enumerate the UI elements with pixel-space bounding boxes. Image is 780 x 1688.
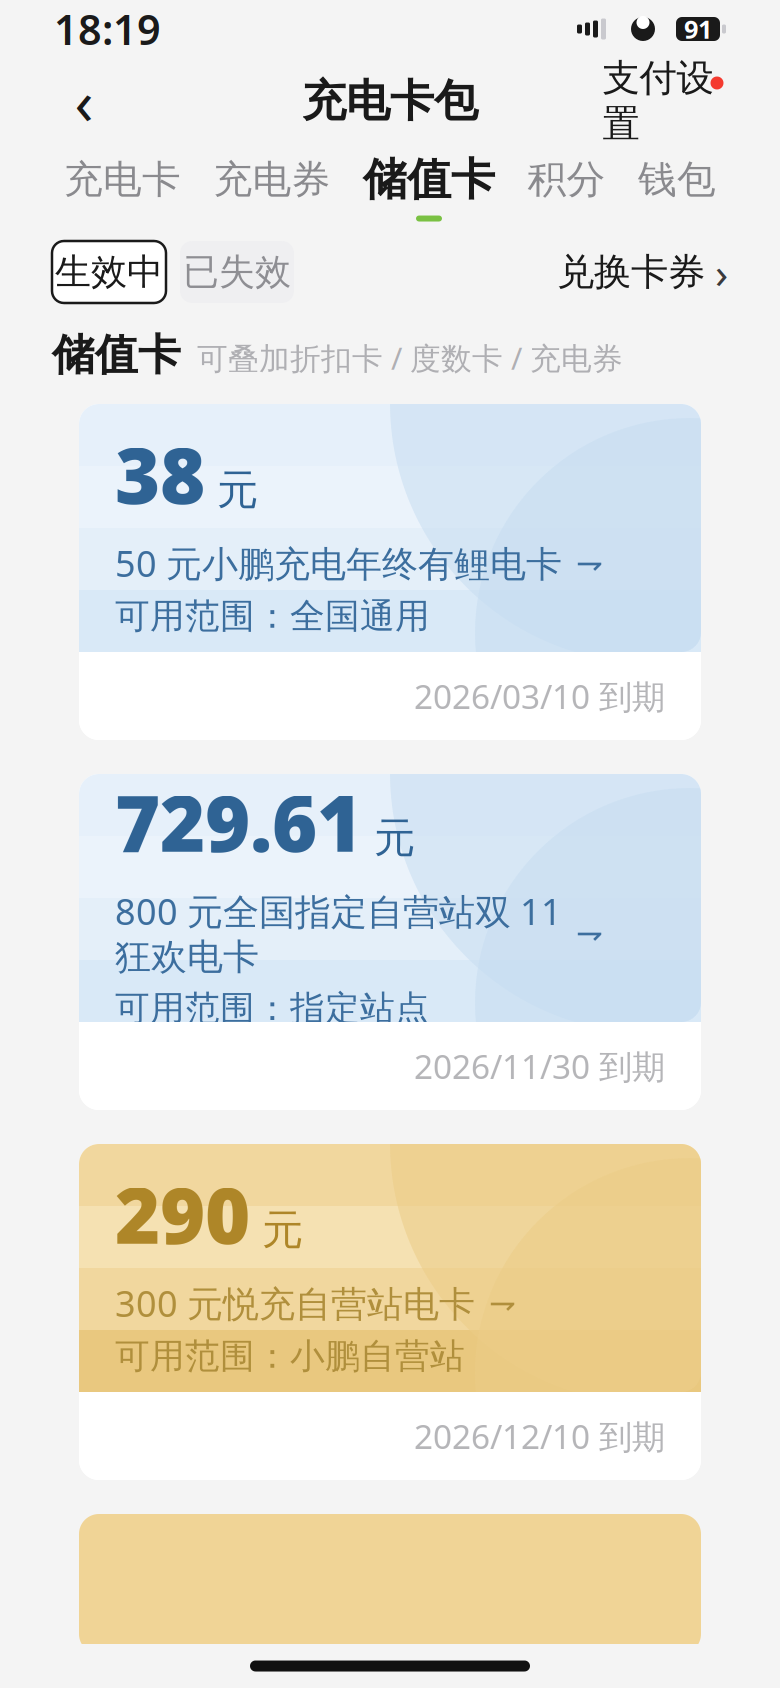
staticText: 充电卡 <box>64 156 181 203</box>
staticText: 可用范围：全国通用 <box>115 595 430 638</box>
button[interactable]: 290 <box>79 1144 701 1480</box>
button[interactable]: 38 <box>79 404 701 740</box>
staticText: 可用范围：小鹏自营站 <box>115 1335 465 1378</box>
staticText: 2026/03/10 到期 <box>414 674 665 718</box>
staticText: 729.61 <box>115 770 362 873</box>
staticText: ⇁ <box>489 1285 516 1321</box>
staticText: 已失效 <box>183 250 291 294</box>
staticText: 积分 <box>527 156 605 203</box>
staticText: ⇁ <box>576 915 603 951</box>
staticText: 钱包 <box>638 156 716 203</box>
staticText: 可叠加折扣卡 / 度数卡 / 充电券 <box>197 337 623 378</box>
button[interactable]: 生效中 <box>52 241 166 303</box>
button[interactable]: 钱包 <box>630 156 724 218</box>
staticText: 元 <box>217 465 258 515</box>
button[interactable]: 充电卡 <box>56 156 189 218</box>
staticText: 生效中 <box>55 250 163 294</box>
staticText: › <box>715 244 728 300</box>
staticText: 可用范围：指定站点 <box>115 987 430 1030</box>
staticText: ‹ <box>74 60 93 142</box>
staticText: 储值卡 <box>52 329 181 381</box>
button[interactable]: 支付设置 <box>588 69 728 133</box>
button[interactable]: 已失效 <box>180 241 294 303</box>
button[interactable]: 729.61 <box>79 774 701 1110</box>
button[interactable]: Back <box>52 69 116 133</box>
button[interactable]: 储值卡 <box>355 152 503 221</box>
staticText: 兑换卡券 <box>557 249 705 295</box>
staticText: ⇁ <box>576 545 603 581</box>
staticText: 储值卡 <box>363 152 495 206</box>
button[interactable]: 充电券 <box>205 156 338 218</box>
staticText: 38 <box>115 422 205 525</box>
staticText: 充电卡包 <box>302 74 478 128</box>
staticText: 2026/12/10 到期 <box>414 1414 665 1458</box>
staticText: 18:19 <box>54 2 161 56</box>
staticText: 元 <box>374 813 415 863</box>
staticText: 300 元悦充自营站电卡 <box>115 1279 475 1327</box>
staticText: 2026/11/30 到期 <box>414 1044 665 1088</box>
staticText: 91 <box>684 12 712 46</box>
staticText: 充电券 <box>213 156 330 203</box>
staticText: 元 <box>262 1205 303 1255</box>
button[interactable]: 积分 <box>519 156 613 218</box>
button[interactable]: 兑换卡券 <box>557 241 728 303</box>
staticText: 290 <box>115 1162 250 1265</box>
staticText: 50 元小鹏充电年终有鲤电卡 <box>115 539 562 587</box>
staticText: 支付设置 <box>602 55 713 147</box>
staticText: 800 元全国指定自营站双 11 狂欢电卡 <box>115 887 562 979</box>
